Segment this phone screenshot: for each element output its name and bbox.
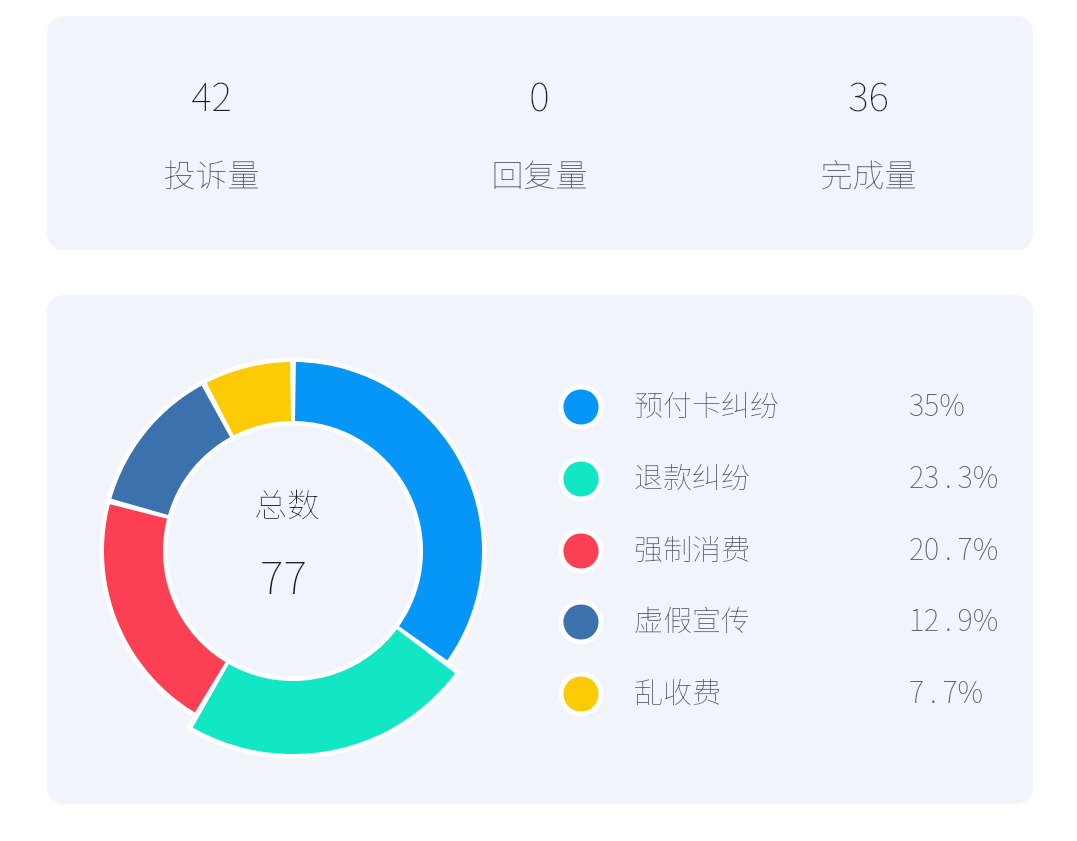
staticText: 总数 [254, 479, 320, 523]
button[interactable]: 虚假宣传 [505, 588, 1015, 648]
button[interactable]: 36 [704, 16, 1033, 250]
staticText: 退款纠纷 [634, 454, 751, 496]
button[interactable]: 强制消费 [505, 517, 1015, 577]
staticText: 强制消费 [634, 526, 751, 568]
staticText: 23 . 3% [909, 454, 999, 496]
staticText: 20 . 7% [909, 526, 999, 568]
button[interactable]: 退款纠纷 [505, 445, 1015, 505]
staticText: 乱收费 [634, 669, 722, 711]
button[interactable]: 0 [375, 16, 704, 250]
staticText: 完成量 [820, 150, 917, 194]
staticText: 35% [909, 382, 965, 424]
button[interactable]: 预付卡纠纷 [505, 373, 1015, 433]
staticText: 投诉量 [163, 150, 260, 194]
staticText: 7 . 7% [909, 669, 984, 711]
staticText: 42 [191, 66, 232, 118]
button[interactable]: 42 [47, 16, 375, 250]
button[interactable]: 投诉类型占比环形图 [87, 345, 499, 757]
staticText: 12 . 9% [909, 597, 999, 639]
staticText: 36 [848, 66, 889, 118]
staticText: 77 [260, 542, 307, 600]
staticText: 虚假宣传 [634, 597, 751, 639]
button[interactable]: 乱收费 [505, 660, 1015, 720]
staticText: 回复量 [491, 150, 588, 194]
staticText: 0 [529, 66, 550, 118]
staticText: 预付卡纠纷 [634, 382, 780, 424]
